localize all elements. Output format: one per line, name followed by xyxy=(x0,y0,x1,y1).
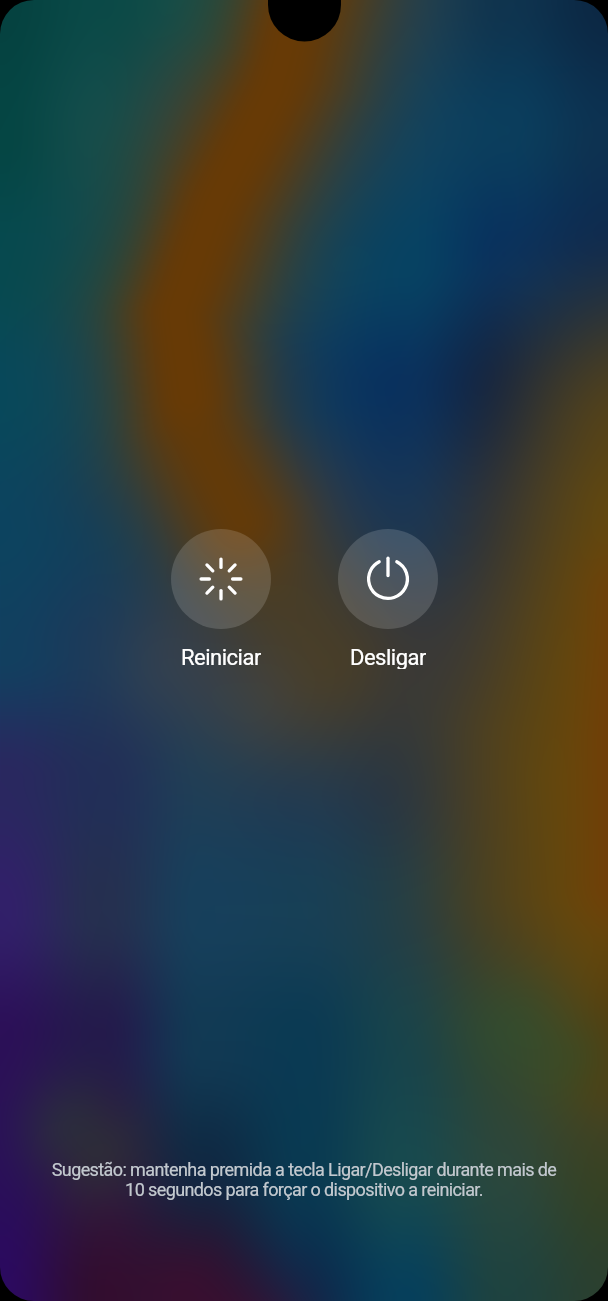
button[interactable]: Reiniciar xyxy=(171,529,271,629)
staticText: Sugestão: mantenha premida a tecla Ligar… xyxy=(40,1159,568,1201)
staticText: Desligar xyxy=(350,645,426,669)
staticText: Reiniciar xyxy=(181,645,261,669)
button[interactable]: Desligar xyxy=(338,529,438,629)
